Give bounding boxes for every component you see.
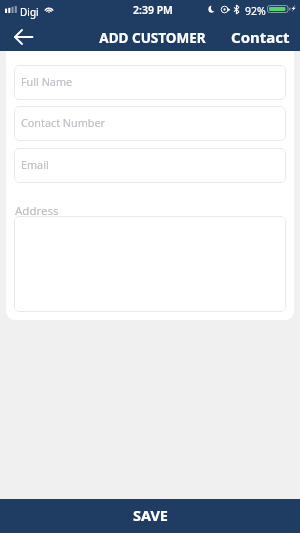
button[interactable]: Email [14,148,286,183]
staticText: 2:39 PM [133,3,173,17]
staticText: Contact [231,27,290,47]
button[interactable]: Back [0,20,46,51]
staticText: 92% [245,4,266,18]
staticText: Email [21,157,49,172]
staticText: Digi [20,5,39,19]
staticText: SAVE [133,505,168,525]
staticText: Full Name [21,74,73,89]
button[interactable]: SAVE [0,499,300,533]
button[interactable]: Contact Number [14,106,286,141]
staticText: Address [15,203,59,219]
button[interactable]: Address [14,216,286,312]
button[interactable]: Contact [231,20,300,51]
staticText: ADD CUSTOMER [99,29,206,47]
button[interactable]: Full Name [14,65,286,100]
staticText: Contact Number [21,115,106,130]
